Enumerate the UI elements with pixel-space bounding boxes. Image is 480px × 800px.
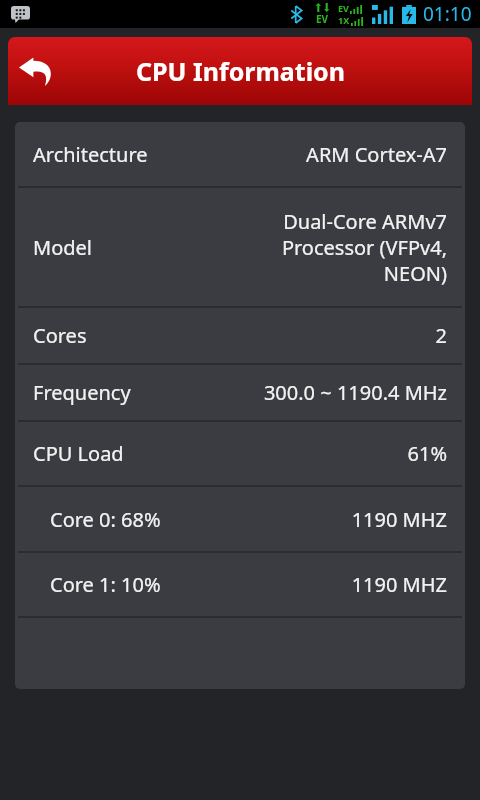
staticText: 1X (338, 14, 350, 26)
staticText: CPU Information (136, 54, 345, 88)
staticText: 1190 MHZ (351, 506, 447, 533)
button[interactable]: Cores (15, 308, 465, 363)
button[interactable]: Model (15, 188, 465, 306)
staticText: 1190 MHZ (351, 571, 447, 598)
button[interactable]: CPU Load (15, 422, 465, 485)
staticText: Cores (33, 322, 87, 349)
staticText: ARM Cortex-A7 (306, 141, 447, 168)
button[interactable]: Architecture (15, 122, 465, 186)
staticText: EV (338, 2, 349, 14)
button[interactable]: Core 1: 10% (15, 553, 465, 616)
staticText: CPU Load (33, 440, 124, 467)
staticText: Core 0: 68% (50, 506, 161, 533)
staticText: 2 (435, 322, 447, 349)
staticText: Dual-Core ARMv7 Processor (VFPv4, NEON) (281, 208, 447, 287)
staticText: 01:10 (423, 1, 472, 27)
staticText: Architecture (33, 141, 148, 168)
staticText: EV (316, 12, 329, 26)
button[interactable]: Back (8, 42, 66, 100)
staticText: Model (33, 234, 92, 261)
button[interactable]: Core 0: 68% (15, 487, 465, 551)
staticText: 300.0 ~ 1190.4 MHz (263, 379, 447, 406)
staticText: 61% (407, 440, 447, 467)
staticText: Frequency (33, 379, 131, 406)
button[interactable]: Frequency (15, 365, 465, 420)
staticText: Core 1: 10% (50, 571, 161, 598)
